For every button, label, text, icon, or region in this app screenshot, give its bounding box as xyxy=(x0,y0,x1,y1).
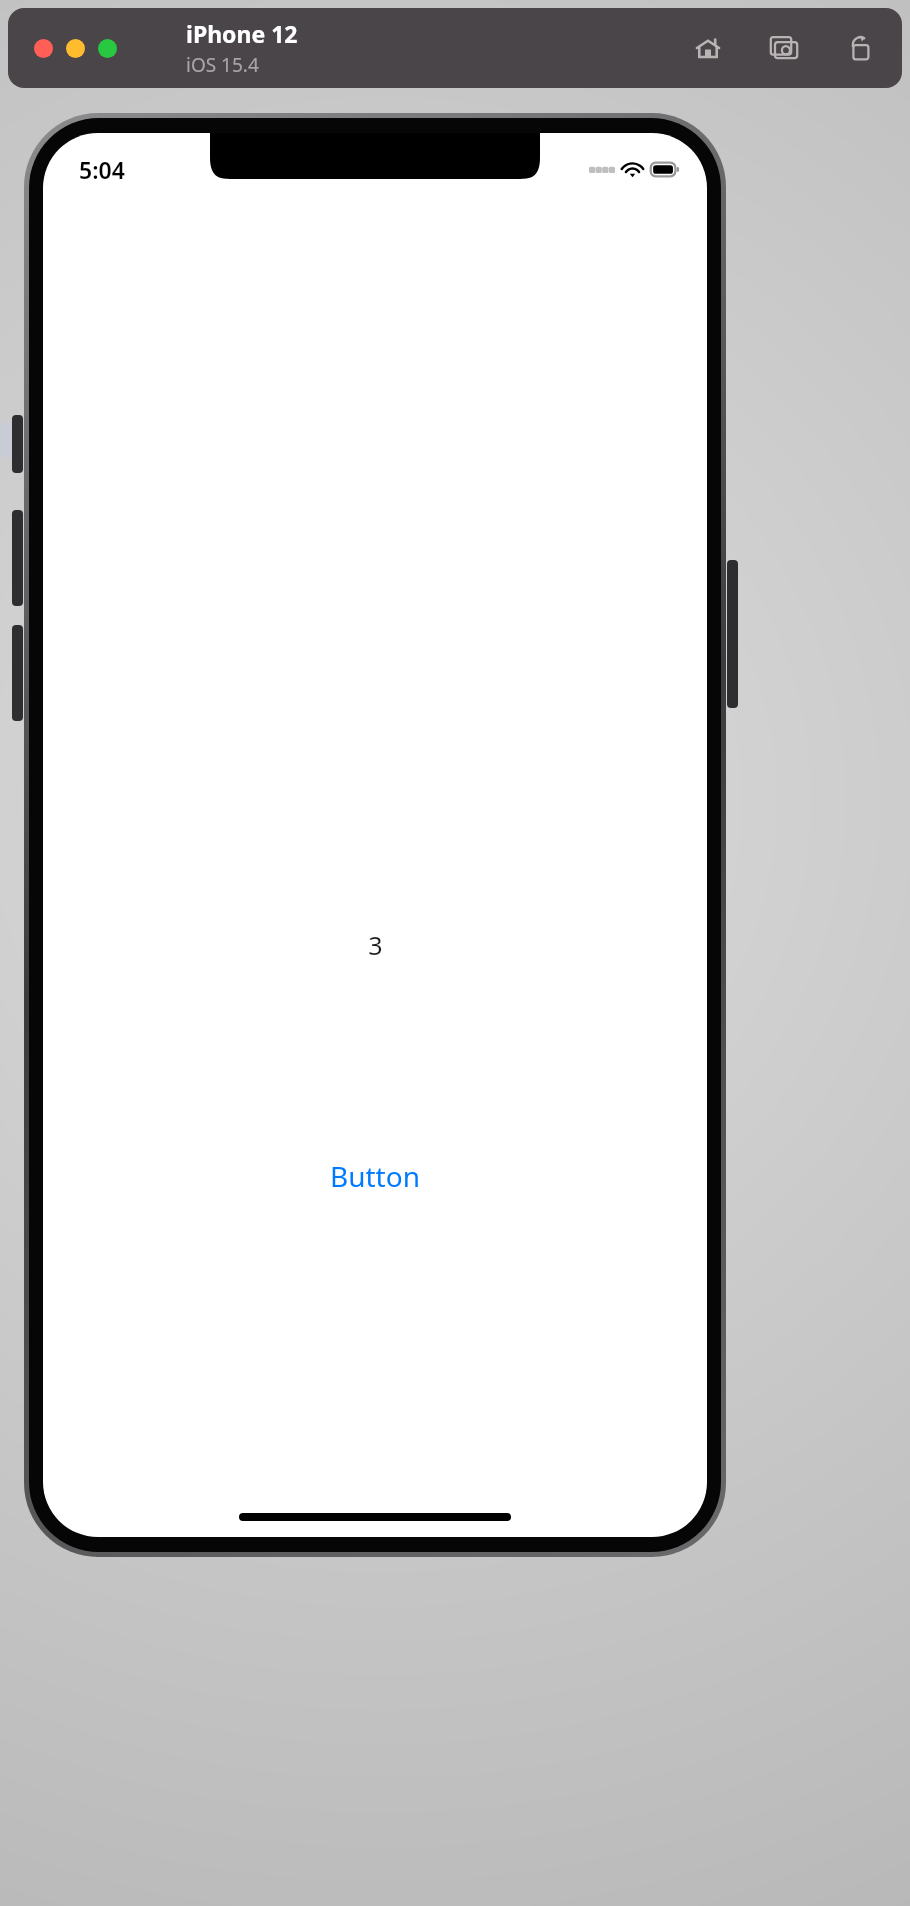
button[interactable]: Silent switch xyxy=(12,415,23,473)
staticText: 3 xyxy=(368,928,383,962)
staticText: iPhone 12 xyxy=(186,18,298,49)
staticText: iOS 15.4 xyxy=(186,52,259,78)
button[interactable]: Window control xyxy=(98,39,117,58)
button[interactable]: Volume down xyxy=(12,625,23,721)
staticText: 5:04 xyxy=(79,154,125,185)
button[interactable]: Rotate device xyxy=(838,26,882,70)
button[interactable]: Take screenshot xyxy=(762,26,806,70)
button[interactable]: Volume up xyxy=(12,510,23,606)
button[interactable]: Home xyxy=(686,26,730,70)
button[interactable]: Window control xyxy=(34,39,53,58)
button[interactable]: Button xyxy=(316,1149,434,1203)
button[interactable]: Window control xyxy=(66,39,85,58)
button[interactable]: Power xyxy=(727,560,738,708)
staticText: Button xyxy=(330,1157,420,1195)
